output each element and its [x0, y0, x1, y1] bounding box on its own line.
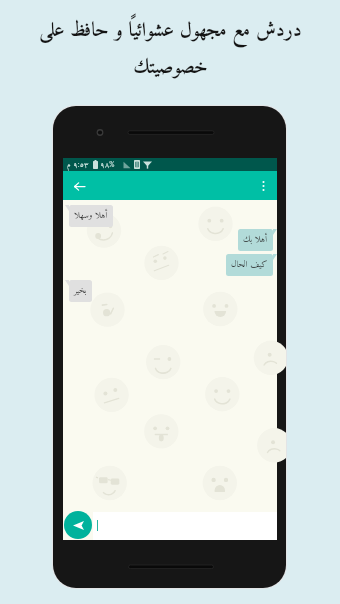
- staticText: ﺩﺭﺩﺵ ﻣﻊ ﻣﺠﻬﻮﻝ ﻋﺸﻮﺍﺋﻴﺎً ﻭ ﺣﺎﻓﻆ ﻋﻠﻰ: [39, 14, 302, 49]
- button[interactable]: More options: [253, 176, 273, 196]
- button[interactable]: ﺃﻫﻼ ﻭﺳﻬﻼ: [69, 205, 113, 227]
- button[interactable]: Back: [69, 176, 89, 196]
- staticText: ٩٨%: [100, 158, 115, 171]
- staticText: ﻛﻴﻒ ﺍﻟﺤﺎﻝ: [231, 257, 268, 273]
- button[interactable]: ﺑﺨﻴﺮ: [69, 280, 92, 302]
- button[interactable]: Send: [64, 511, 92, 539]
- button[interactable]: ﻛﻴﻒ ﺍﻟﺤﺎﻝ: [226, 254, 273, 276]
- staticText: ﺑﺨﻴﺮ: [74, 283, 87, 299]
- staticText: ﺃﻫﻼ ﺑﻚ: [243, 232, 268, 248]
- staticText: ﺃﻫﻼ ﻭﺳﻬﻼ: [74, 208, 108, 224]
- staticText: ﺧﺼﻮﺻﻴﺘﻚ: [133, 51, 208, 86]
- staticText: ٩:٥٣ ﻡ: [67, 158, 89, 171]
- button[interactable]: ﺃﻫﻼ ﺑﻚ: [238, 229, 273, 251]
